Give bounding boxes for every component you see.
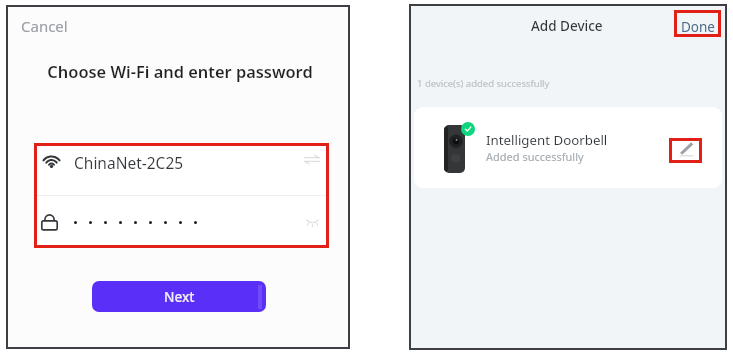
staticText: Cancel — [21, 16, 68, 36]
button[interactable]: Cancel — [17, 13, 72, 39]
button[interactable]: Rename device — [673, 136, 699, 162]
staticText: 1 device(s) added successfully — [417, 77, 550, 90]
staticText: ChinaNet-2C25 — [74, 152, 184, 173]
button[interactable]: Next — [92, 281, 266, 312]
staticText: Done — [681, 18, 715, 36]
button[interactable] — [34, 196, 329, 248]
button[interactable]: Intelligent Doorbell — [414, 107, 722, 188]
button[interactable]: Done — [677, 15, 719, 39]
staticText: Next — [164, 288, 195, 306]
staticText: Added successfully — [486, 149, 584, 164]
staticText: Add Device — [531, 17, 603, 35]
staticText: Intelligent Doorbell — [486, 131, 608, 149]
staticText: Choose Wi-Fi and enter password — [20, 60, 340, 82]
button[interactable]: ChinaNet-2C25 — [34, 143, 329, 175]
